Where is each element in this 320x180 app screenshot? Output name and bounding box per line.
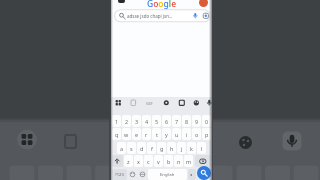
staticText: GIF — [146, 101, 153, 106]
button[interactable]: x — [134, 155, 143, 167]
staticText: w — [124, 131, 129, 138]
staticText: 7 — [175, 118, 179, 125]
staticText: adsse jsdo chapi jsn... — [127, 13, 173, 19]
staticText: h — [170, 145, 174, 152]
staticText: y — [165, 131, 168, 138]
button[interactable] — [188, 169, 196, 180]
staticText: a — [120, 145, 124, 152]
button[interactable]: 2 — [122, 115, 131, 127]
staticText: i — [186, 131, 188, 138]
button[interactable]: c — [144, 155, 153, 167]
staticText: 2 — [125, 118, 129, 125]
button[interactable]: n — [174, 155, 183, 167]
staticText: 8 — [185, 118, 189, 125]
staticText: u — [175, 131, 179, 138]
button[interactable]: k — [187, 142, 196, 154]
button[interactable]: English — [148, 169, 187, 180]
staticText: s — [130, 145, 133, 152]
button[interactable] — [197, 166, 211, 180]
button[interactable]: 9 — [192, 115, 201, 127]
staticText: c — [147, 158, 150, 165]
staticText: b — [167, 158, 171, 165]
staticText: g — [160, 145, 164, 152]
button[interactable] — [195, 155, 211, 167]
button[interactable] — [118, 0, 125, 3]
button[interactable]: 5 — [152, 115, 161, 127]
staticText: o — [195, 131, 199, 138]
staticText: k — [190, 145, 193, 152]
staticText: Google — [147, 0, 177, 9]
button[interactable]: z — [124, 155, 133, 167]
staticText: p — [205, 131, 209, 138]
staticText: m — [186, 158, 192, 165]
button[interactable]: v — [154, 155, 163, 167]
button[interactable]: g — [157, 142, 166, 154]
staticText: x — [137, 158, 140, 165]
button[interactable]: a — [117, 142, 126, 154]
staticText: q — [115, 131, 119, 138]
staticText: 4 — [145, 118, 149, 125]
staticText: z — [127, 158, 130, 165]
staticText: 9 — [195, 118, 199, 125]
staticText: 6 — [165, 118, 169, 125]
staticText: f — [151, 145, 153, 152]
staticText: v — [157, 158, 160, 165]
staticText: 0 — [205, 118, 209, 125]
button[interactable]: 7 — [172, 115, 181, 127]
button[interactable] — [115, 10, 211, 22]
staticText: j — [181, 145, 183, 152]
button[interactable]: 1 — [112, 115, 121, 127]
button[interactable]: h — [167, 142, 176, 154]
button[interactable]: f — [147, 142, 156, 154]
staticText: 3 — [135, 118, 139, 125]
button[interactable]: l — [197, 142, 206, 154]
button[interactable] — [199, 0, 208, 7]
button[interactable]: ?123 — [112, 169, 127, 180]
button[interactable]: e — [132, 128, 141, 140]
staticText: d — [140, 145, 144, 152]
button[interactable]: d — [137, 142, 146, 154]
button[interactable]: u — [172, 128, 181, 140]
staticText: 5 — [155, 118, 159, 125]
button[interactable]: o — [192, 128, 201, 140]
button[interactable]: s — [127, 142, 136, 154]
button[interactable]: t — [152, 128, 161, 140]
button[interactable]: 8 — [182, 115, 191, 127]
staticText: n — [177, 158, 181, 165]
button[interactable]: j — [177, 142, 186, 154]
staticText: r — [145, 131, 148, 138]
button[interactable]: i — [182, 128, 191, 140]
button[interactable]: 0 — [202, 115, 211, 127]
button[interactable] — [112, 155, 123, 167]
button[interactable]: b — [164, 155, 173, 167]
staticText: l — [201, 145, 203, 152]
staticText: ?123 — [115, 172, 124, 178]
staticText: 1 — [115, 118, 119, 125]
button[interactable]: p — [202, 128, 211, 140]
staticText: t — [156, 131, 158, 138]
button[interactable]: 3 — [132, 115, 141, 127]
button[interactable]: m — [184, 155, 193, 167]
staticText: e — [135, 131, 139, 138]
button[interactable]: 6 — [162, 115, 171, 127]
button[interactable]: q — [112, 128, 121, 140]
button[interactable]: r — [142, 128, 151, 140]
button[interactable]: y — [162, 128, 171, 140]
button[interactable]: w — [122, 128, 131, 140]
button[interactable]: 4 — [142, 115, 151, 127]
staticText: English — [160, 172, 175, 178]
